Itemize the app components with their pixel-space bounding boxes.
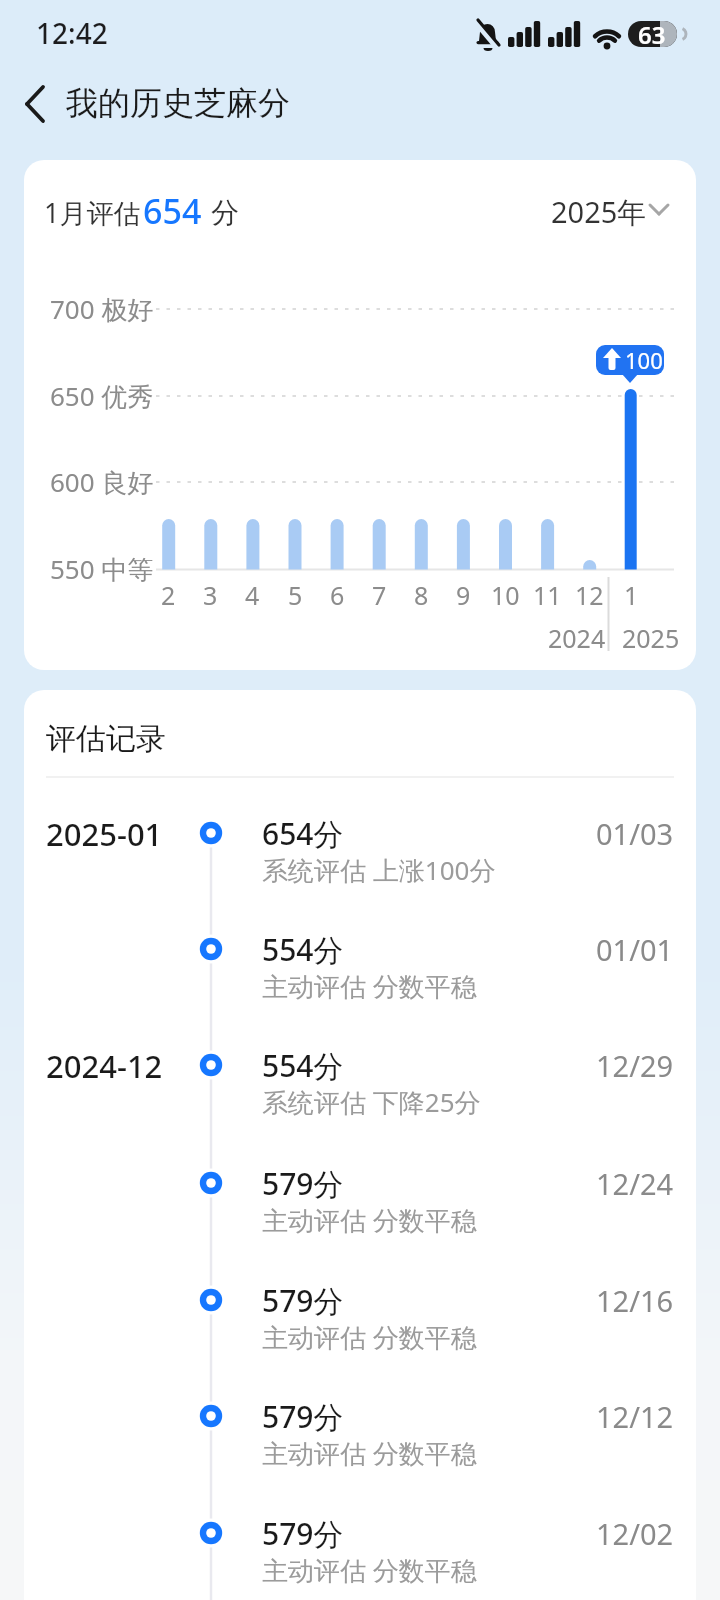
staticText: 700 极好 (50, 291, 154, 327)
staticText: 12 (575, 578, 604, 612)
staticText: 12/12 (596, 1397, 674, 1436)
staticText: 579分 (262, 1513, 344, 1554)
staticText: 主动评估 分数平稳 (262, 1435, 477, 1471)
staticText: 550 中等 (50, 551, 154, 587)
staticText: 1月评估 (44, 194, 141, 231)
staticText: 01/01 (596, 930, 674, 969)
staticText: 01/03 (596, 814, 674, 853)
button[interactable] (190, 788, 674, 880)
staticText: 1 (624, 578, 639, 612)
staticText: 评估记录 (46, 720, 166, 758)
button[interactable] (190, 904, 674, 996)
staticText: 3 (203, 578, 218, 612)
staticText: 2025-01 (46, 813, 163, 855)
staticText: 579分 (262, 1280, 344, 1321)
staticText: 系统评估 上涨100分 (262, 852, 496, 888)
staticText: 600 良好 (50, 464, 154, 500)
staticText: 主动评估 分数平稳 (262, 1552, 477, 1588)
staticText: 10 (491, 578, 520, 612)
staticText: 2025年 (551, 192, 647, 232)
staticText: 554分 (262, 1045, 344, 1086)
staticText: 12:42 (36, 14, 108, 52)
staticText: 主动评估 分数平稳 (262, 1202, 477, 1238)
button[interactable] (190, 1255, 674, 1347)
staticText: 11 (533, 578, 562, 612)
staticText: 12/16 (596, 1281, 674, 1320)
button[interactable] (190, 1371, 674, 1463)
staticText: 2025 (622, 621, 680, 655)
staticText: 63 (638, 18, 666, 51)
staticText: 654 (143, 188, 202, 234)
staticText: 579分 (262, 1396, 344, 1437)
staticText: 100 (625, 345, 663, 375)
staticText: 12/24 (596, 1164, 674, 1203)
button[interactable]: 2025年 (520, 188, 680, 236)
staticText: 4 (245, 578, 260, 612)
button[interactable] (190, 1020, 674, 1112)
button[interactable] (190, 1138, 674, 1230)
staticText: 主动评估 分数平稳 (262, 1319, 477, 1355)
staticText: 5 (288, 578, 303, 612)
staticText: 654分 (262, 813, 344, 854)
staticText: 12/29 (596, 1046, 674, 1085)
staticText: 8 (414, 578, 429, 612)
staticText: 6 (330, 578, 345, 612)
staticText: 12/02 (596, 1514, 674, 1553)
staticText: 2024-12 (46, 1045, 163, 1087)
staticText: 主动评估 分数平稳 (262, 968, 477, 1004)
button[interactable] (190, 1488, 674, 1580)
staticText: 系统评估 下降25分 (262, 1084, 481, 1120)
staticText: 2024 (548, 621, 606, 655)
button[interactable] (10, 80, 60, 128)
staticText: 分 (211, 195, 239, 230)
staticText: 650 优秀 (50, 378, 154, 414)
staticText: 554分 (262, 929, 344, 970)
staticText: 579分 (262, 1163, 344, 1204)
staticText: 9 (456, 578, 471, 612)
staticText: 7 (372, 578, 387, 612)
staticText: 2 (161, 578, 176, 612)
staticText: 我的历史芝麻分 (66, 83, 290, 123)
